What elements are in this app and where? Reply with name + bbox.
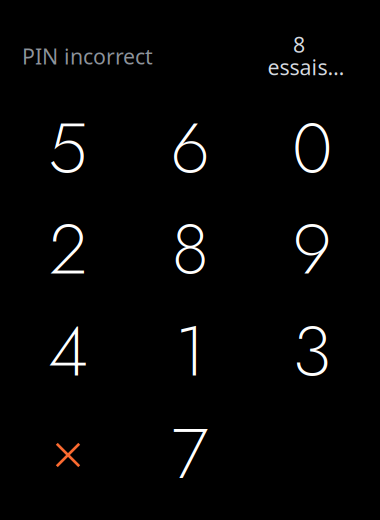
staticText: 3	[292, 300, 331, 402]
staticText: 9	[292, 198, 331, 300]
button[interactable]: 7	[129, 403, 251, 504]
button[interactable]: 5	[7, 97, 129, 199]
button[interactable]: 9	[251, 198, 373, 300]
staticText: 8	[171, 198, 208, 300]
staticText: PIN incorrect	[22, 42, 153, 70]
staticText: 6	[170, 97, 209, 199]
staticText: 5	[48, 97, 88, 199]
staticText: 8	[293, 30, 305, 59]
button[interactable]: 8	[129, 198, 251, 300]
button[interactable]: 0	[251, 97, 373, 199]
button[interactable]: Cancel	[7, 403, 129, 504]
staticText: 7	[171, 402, 208, 504]
staticText: 2	[49, 198, 87, 300]
button[interactable]: 6	[129, 97, 251, 199]
button[interactable]: 2	[7, 198, 129, 300]
staticText: essais…	[267, 53, 344, 81]
staticText: 4	[48, 300, 88, 402]
button[interactable]: 4	[7, 300, 129, 402]
staticText: 1	[175, 300, 205, 402]
button[interactable]: 3	[251, 300, 373, 402]
staticText: 0	[292, 97, 332, 199]
button[interactable]: 1	[129, 300, 251, 402]
